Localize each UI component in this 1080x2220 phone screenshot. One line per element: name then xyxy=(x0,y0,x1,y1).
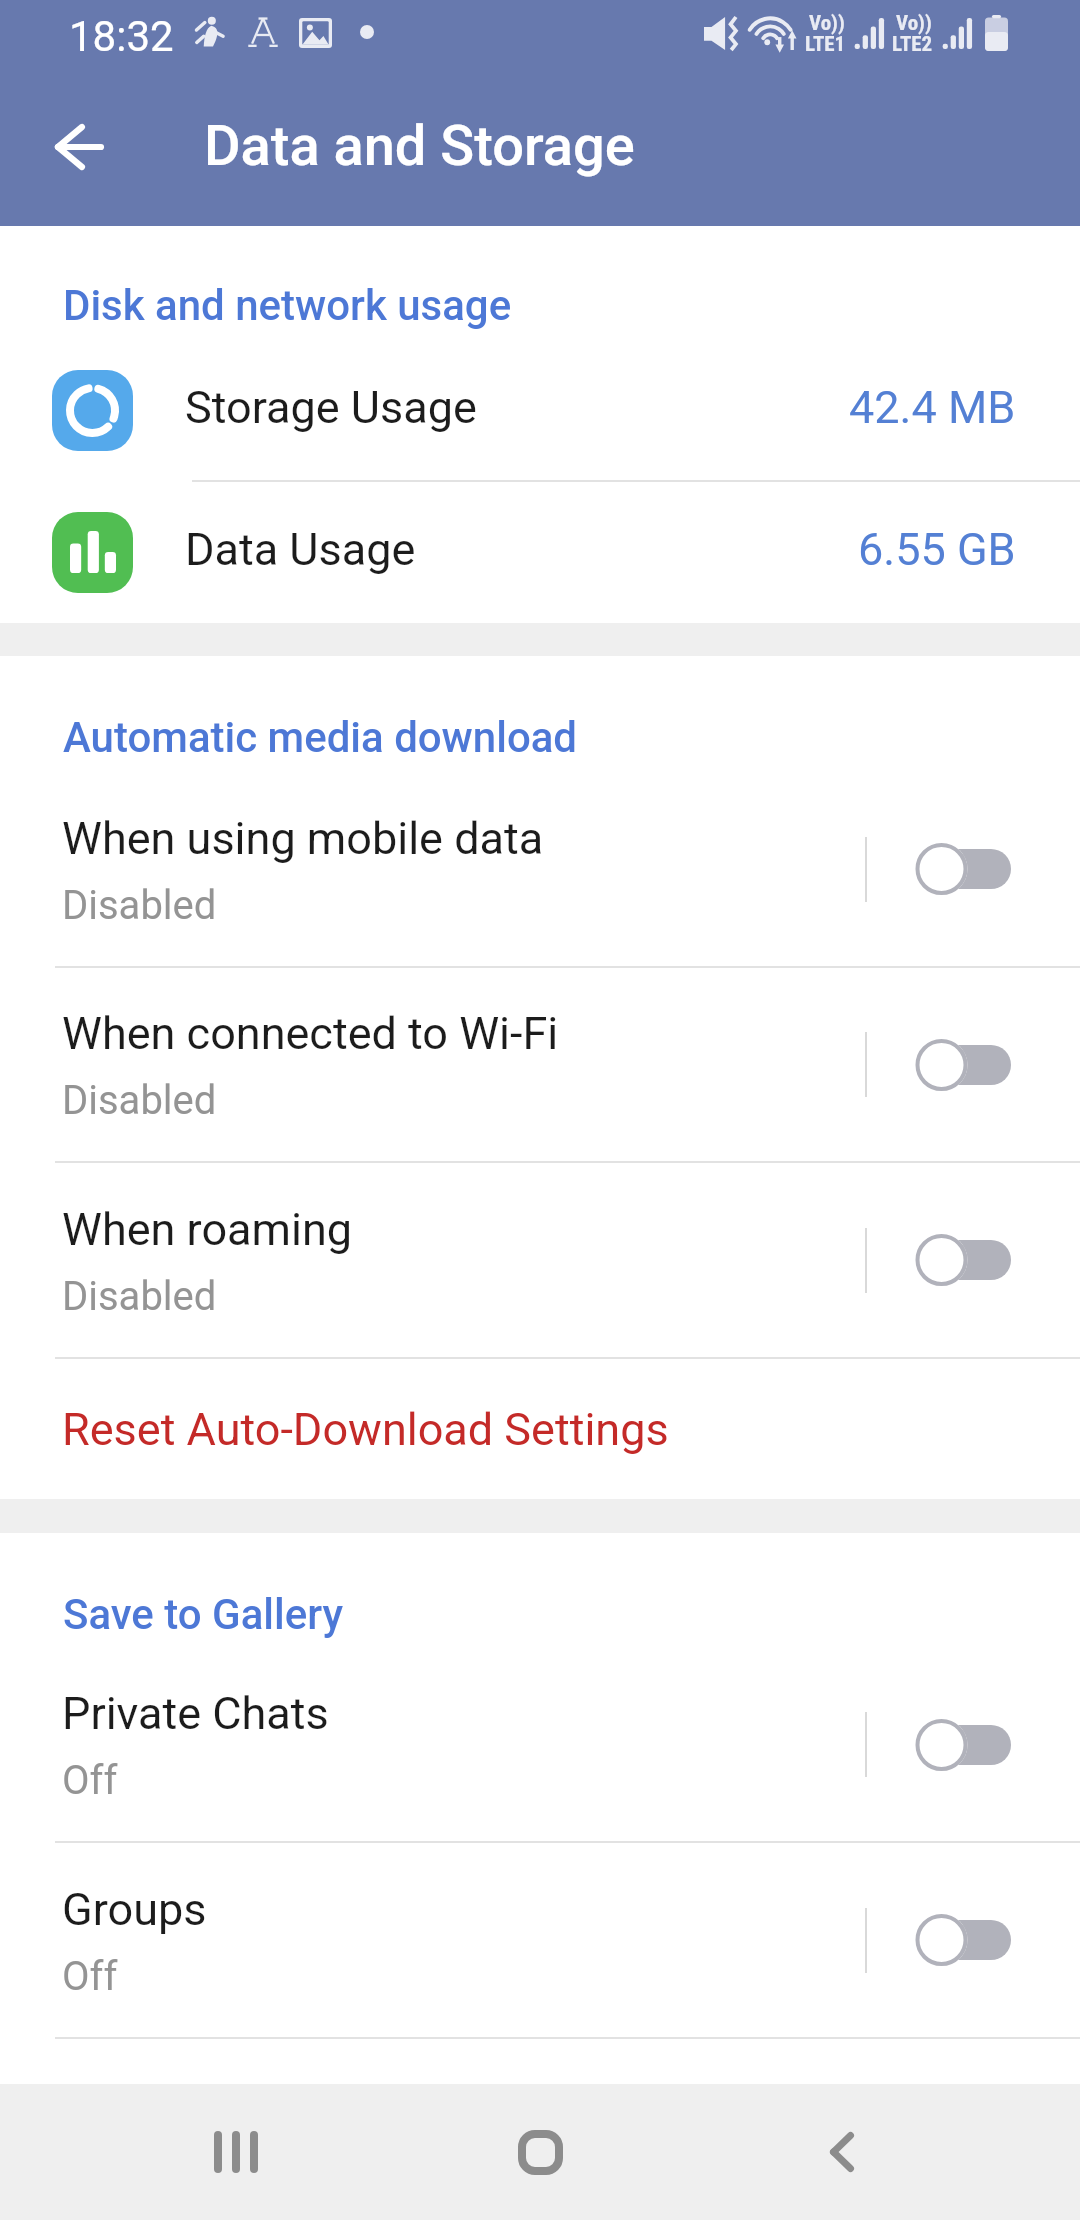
button[interactable]: Groups xyxy=(0,1843,1080,2037)
button[interactable]: When connected to Wi-Fi xyxy=(867,968,1080,1161)
staticText: LTE2 xyxy=(892,32,933,57)
staticText: Disk and network usage xyxy=(63,281,512,330)
staticText: Groups xyxy=(62,1883,207,1936)
button[interactable]: When using mobile data xyxy=(867,772,1080,966)
staticText: 18:32 xyxy=(69,12,174,61)
staticText: Vo)) xyxy=(896,11,932,36)
button[interactable]: When connected to Wi-Fi xyxy=(0,968,1080,1161)
button[interactable]: When roaming xyxy=(0,1163,1080,1357)
button[interactable]: Recent apps xyxy=(160,2102,312,2202)
button[interactable]: Storage Usage xyxy=(0,340,1080,480)
staticText: Off xyxy=(62,1953,118,2000)
staticText: Private Chats xyxy=(62,1687,329,1740)
button[interactable]: Reset Auto-Download Settings xyxy=(0,1359,1080,1499)
staticText: 42.4 MB xyxy=(849,381,1016,434)
staticText: Off xyxy=(62,1757,118,1804)
staticText: LTE1 xyxy=(805,32,846,57)
button[interactable]: When roaming xyxy=(867,1163,1080,1357)
button[interactable]: Home xyxy=(464,2102,616,2202)
button[interactable]: Back xyxy=(25,93,133,201)
staticText: Disabled xyxy=(62,1273,217,1320)
staticText: Disabled xyxy=(62,1077,217,1124)
staticText: Save to Gallery xyxy=(63,1590,343,1639)
staticText: Reset Auto-Download Settings xyxy=(62,1403,669,1456)
staticText: Storage Usage xyxy=(185,381,477,434)
staticText: Disabled xyxy=(62,882,217,929)
staticText: When connected to Wi-Fi xyxy=(62,1007,559,1060)
staticText: 6.55 GB xyxy=(858,523,1016,576)
button[interactable]: Private Chats xyxy=(0,1648,1080,1841)
staticText: When roaming xyxy=(62,1203,353,1256)
button[interactable]: Groups xyxy=(867,1843,1080,2037)
staticText: Data Usage xyxy=(185,523,416,576)
button[interactable]: Back xyxy=(766,2102,918,2202)
staticText: Data and Storage xyxy=(204,113,635,179)
staticText: Vo)) xyxy=(809,11,845,36)
staticText: When using mobile data xyxy=(62,812,544,865)
button[interactable]: When using mobile data xyxy=(0,772,1080,966)
staticText: Automatic media download xyxy=(63,713,578,762)
button[interactable]: Private Chats xyxy=(867,1648,1080,1841)
button[interactable]: Data Usage xyxy=(0,482,1080,623)
